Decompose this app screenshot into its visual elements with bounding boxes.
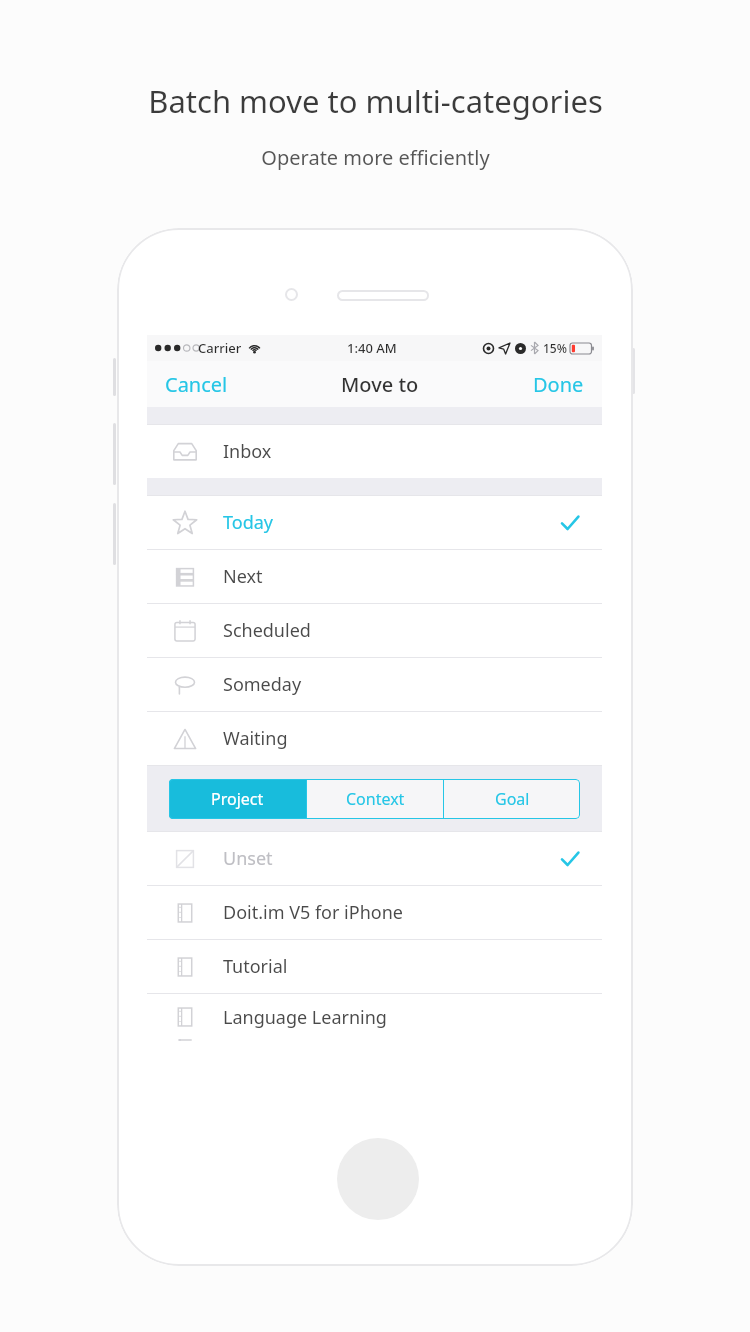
button[interactable]: Project	[169, 779, 306, 819]
button[interactable]: Next	[147, 550, 602, 603]
staticText: Project	[211, 788, 264, 810]
staticText: Doit.im V5 for iPhone	[223, 900, 403, 925]
button[interactable]: Today	[147, 496, 602, 549]
staticText: Cancel	[165, 371, 228, 398]
button[interactable]: Scheduled	[147, 604, 602, 657]
button[interactable]: Waiting	[147, 712, 602, 765]
staticText: Context	[346, 788, 405, 810]
button[interactable]: Tutorial	[147, 940, 602, 993]
button[interactable]: Cancel	[161, 365, 232, 404]
button[interactable]: Goal	[444, 779, 580, 819]
staticText: Inbox	[223, 439, 272, 464]
button[interactable]: Done	[529, 365, 588, 404]
staticText: Tutorial	[223, 954, 288, 979]
staticText: Carrier	[198, 339, 242, 357]
staticText: 15%	[543, 340, 567, 356]
button[interactable]: Language Learning	[147, 994, 602, 1040]
staticText: Goal	[495, 788, 530, 810]
button[interactable]: Inbox	[147, 425, 602, 478]
staticText: Language Learning	[223, 1005, 387, 1030]
staticText: Next	[223, 564, 263, 589]
staticText: Today	[223, 510, 273, 535]
staticText: Operate more efficiently	[261, 144, 490, 171]
staticText: Done	[533, 371, 584, 398]
staticText: Unset	[223, 846, 273, 871]
staticText: Scheduled	[223, 618, 311, 643]
staticText: 1:40 AM	[347, 339, 397, 357]
staticText: Batch move to multi-categories	[148, 80, 603, 122]
button[interactable]: Unset	[147, 832, 602, 885]
staticText: Someday	[223, 672, 302, 697]
staticText: Waiting	[223, 726, 288, 751]
button[interactable]: Doit.im V5 for iPhone	[147, 886, 602, 939]
button[interactable]: Someday	[147, 658, 602, 711]
staticText: Move to	[341, 371, 419, 398]
button[interactable]: Context	[307, 779, 443, 819]
